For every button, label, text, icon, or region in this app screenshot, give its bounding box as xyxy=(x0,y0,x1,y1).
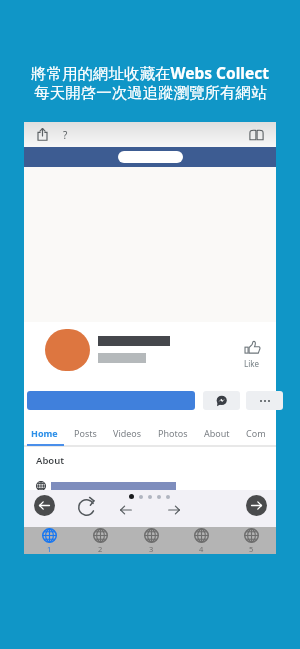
staticText: Posts xyxy=(74,427,97,439)
staticText: Com xyxy=(246,427,266,439)
button[interactable]: Message xyxy=(203,391,240,410)
staticText: 3 xyxy=(149,544,154,554)
staticText: 將常用的網址收藏在Webs Collect xyxy=(31,62,269,83)
button[interactable]: Bookmarks xyxy=(249,127,264,142)
button[interactable]: 1 xyxy=(24,527,75,554)
button[interactable]: Back xyxy=(34,495,55,516)
button[interactable]: Previous page xyxy=(119,503,133,517)
button[interactable]: Next page xyxy=(167,503,181,517)
button[interactable]: Posts xyxy=(74,422,97,443)
button[interactable] xyxy=(118,151,183,163)
button[interactable]: 3 xyxy=(126,527,176,554)
button[interactable]: Com xyxy=(246,422,266,443)
staticText: Videos xyxy=(113,427,142,439)
button[interactable]: Help xyxy=(59,128,72,141)
button[interactable]: Videos xyxy=(113,422,142,443)
staticText: About xyxy=(204,427,230,439)
button[interactable]: Reload xyxy=(78,493,95,516)
staticText: Like xyxy=(244,358,260,369)
staticText: 4 xyxy=(199,544,204,554)
staticText: About xyxy=(36,454,65,467)
staticText: 5 xyxy=(249,544,254,554)
button[interactable] xyxy=(27,391,195,410)
button[interactable]: Forward xyxy=(246,495,267,516)
button[interactable]: Share xyxy=(35,127,50,142)
button[interactable]: Like xyxy=(236,339,268,369)
staticText: ? xyxy=(63,128,68,141)
staticText: 每天開啓一次過追蹤瀏覽所有網站 xyxy=(34,83,267,103)
button[interactable]: Home xyxy=(31,422,58,443)
button[interactable]: 2 xyxy=(75,527,126,554)
button[interactable]: 4 xyxy=(176,527,226,554)
staticText: Photos xyxy=(158,427,188,439)
button[interactable]: More options xyxy=(246,391,283,410)
button[interactable]: Photos xyxy=(158,422,188,443)
button[interactable]: About xyxy=(204,422,230,443)
button[interactable]: 5 xyxy=(226,527,276,554)
staticText: 2 xyxy=(98,544,103,554)
staticText: 1 xyxy=(47,544,52,554)
staticText: Home xyxy=(31,427,58,439)
